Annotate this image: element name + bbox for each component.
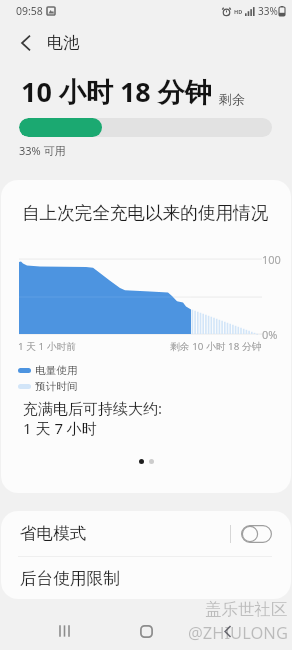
staticText: 33% bbox=[258, 4, 278, 18]
button[interactable]: Back bbox=[12, 22, 40, 64]
staticText: @ZHIULONG bbox=[188, 621, 288, 643]
button[interactable]: Power saving mode toggle bbox=[241, 525, 272, 543]
staticText: 10 小时 18 分钟 bbox=[21, 73, 212, 110]
staticText: 后台使用限制 bbox=[20, 568, 120, 589]
staticText: 0% bbox=[262, 327, 278, 342]
staticText: 自上次完全充电以来的使用情况 bbox=[22, 202, 269, 224]
staticText: 剩余 bbox=[219, 91, 245, 107]
staticText: 盖乐世社区 bbox=[205, 599, 288, 620]
staticText: 电量使用 bbox=[35, 364, 78, 377]
staticText: 充满电后可持续大约: bbox=[23, 398, 163, 418]
staticText: HD bbox=[234, 8, 243, 15]
staticText: 剩余 10 小时 18 分钟 bbox=[170, 340, 262, 353]
staticText: 33% 可用 bbox=[19, 143, 66, 158]
button[interactable]: 后台使用限制 bbox=[1, 557, 291, 599]
staticText: 1 天 1 小时前 bbox=[18, 340, 77, 353]
staticText: 100 bbox=[262, 252, 281, 267]
button[interactable]: Back bbox=[206, 612, 250, 650]
staticText: 1 天 7 小时 bbox=[23, 418, 97, 438]
staticText: 省电模式 bbox=[20, 523, 87, 544]
staticText: 电池 bbox=[47, 33, 79, 53]
staticText: 预计时间 bbox=[35, 380, 78, 393]
staticText: 09:58 bbox=[16, 4, 43, 18]
button[interactable]: 省电模式 bbox=[1, 511, 291, 556]
button[interactable]: Recent apps bbox=[42, 612, 86, 650]
button[interactable]: Home bbox=[124, 612, 168, 650]
